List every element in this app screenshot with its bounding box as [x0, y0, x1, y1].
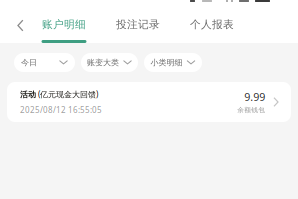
button[interactable]: 今日: [14, 53, 75, 72]
staticText: 2025/08/12 16:55:05: [20, 104, 102, 115]
button[interactable]: 小类明细: [144, 53, 202, 72]
button[interactable]: 账户明细: [41, 15, 87, 45]
staticText: 小类明细: [150, 58, 182, 67]
button[interactable]: 活动 (亿元现金大回馈): [7, 82, 291, 122]
staticText: 账变大类: [87, 58, 119, 67]
staticText: 余额钱包: [237, 106, 265, 114]
staticText: 今日: [21, 58, 37, 67]
button[interactable]: 投注记录: [115, 15, 161, 45]
button[interactable]: 账变大类: [81, 53, 138, 72]
staticText: 投注记录: [116, 18, 160, 31]
staticText: 9.99: [244, 90, 265, 104]
button[interactable]: Back: [0, 15, 41, 40]
staticText: 活动 (亿元现金大回馈): [20, 89, 98, 99]
button[interactable]: 个人报表: [189, 15, 235, 45]
staticText: 账户明细: [42, 18, 86, 31]
staticText: 个人报表: [190, 18, 234, 31]
